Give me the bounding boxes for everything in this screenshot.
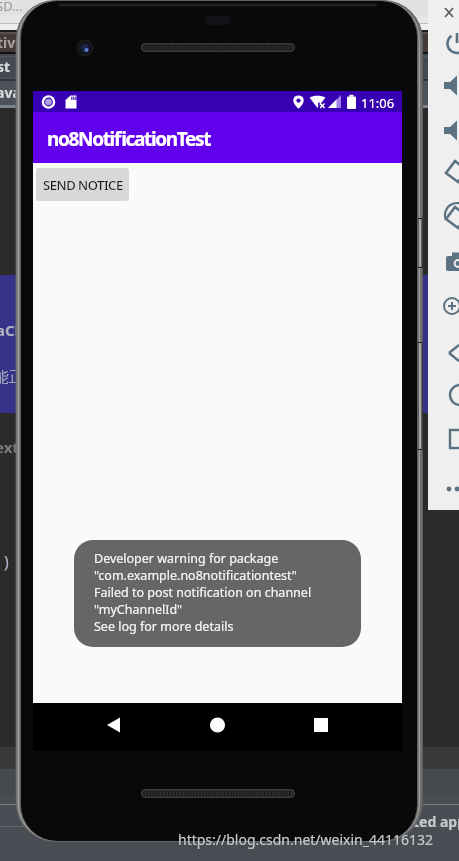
staticText: ) <box>4 551 9 573</box>
staticText: aCl <box>0 320 20 340</box>
staticText: tivit <box>0 33 26 52</box>
staticText: "com.example.no8notificationtest" <box>94 567 297 584</box>
staticText: 11:06 <box>361 94 395 112</box>
button[interactable]: Home <box>197 711 223 737</box>
staticText: no8NotificationTest <box>47 126 211 152</box>
staticText: 能正 <box>0 368 24 387</box>
button[interactable]: Recent apps <box>301 711 327 737</box>
staticText: Failed to post notification on channel <box>94 584 312 601</box>
button[interactable]: Back <box>95 711 121 737</box>
staticText: "myChannelId" <box>94 601 183 618</box>
staticText: SD... <box>0 0 23 15</box>
staticText: ext <box>0 437 19 457</box>
button[interactable]: SEND NOTICE <box>36 168 129 201</box>
staticText: st <box>0 57 11 76</box>
staticText: SEND NOTICE <box>43 176 123 194</box>
staticText: ted app <box>413 812 459 831</box>
staticText: https://blog.csdn.net/weixin_44116132 <box>178 830 434 849</box>
staticText: Developer warning for package <box>94 550 279 567</box>
staticText: See log for more details <box>94 618 234 635</box>
staticText: ava <box>0 83 21 102</box>
